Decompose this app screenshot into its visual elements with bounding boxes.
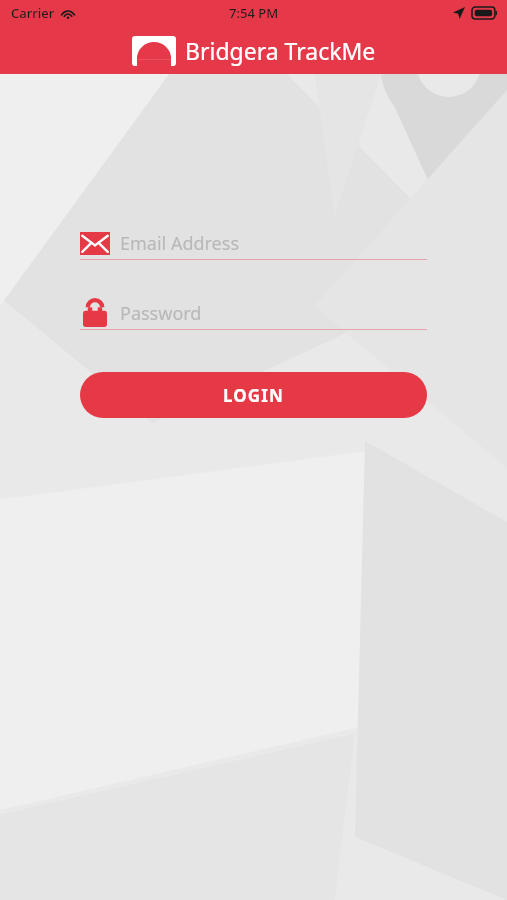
staticText: Carrier: [11, 4, 55, 22]
other: Bridgera logo: [132, 36, 176, 66]
button[interactable]: Password: [80, 298, 427, 330]
button[interactable]: Email: [80, 228, 427, 260]
button[interactable]: LOGIN: [80, 372, 427, 418]
staticText: Password: [120, 301, 202, 326]
staticText: Bridgera TrackMe: [185, 35, 376, 66]
staticText: LOGIN: [223, 384, 284, 407]
staticText: 7:54 PM: [229, 4, 279, 22]
other: Password: [80, 298, 110, 328]
staticText: Email Address: [120, 231, 240, 256]
other: Email: [80, 228, 110, 258]
